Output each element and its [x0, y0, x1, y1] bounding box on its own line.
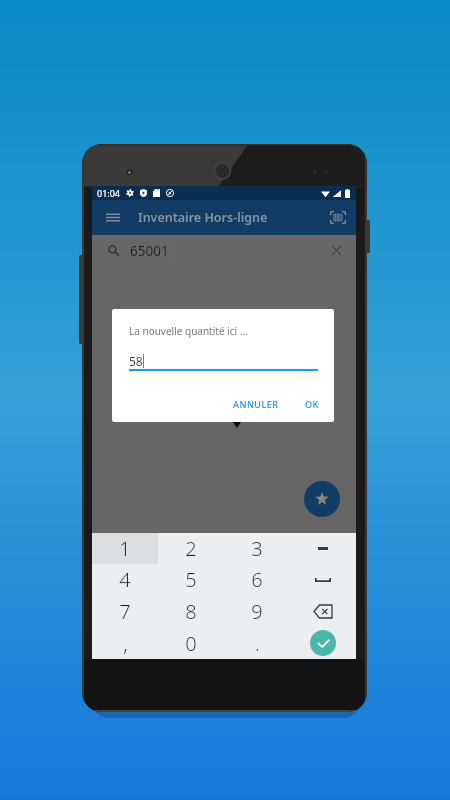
staticText: 58 — [129, 353, 143, 369]
staticText: OK — [305, 398, 319, 410]
button[interactable]: 4 — [92, 564, 158, 595]
button[interactable]: Favorite — [304, 481, 340, 517]
button[interactable]: ok — [290, 627, 356, 659]
staticText: 1 — [119, 535, 131, 562]
staticText: 4 — [119, 566, 131, 593]
staticText: 5 — [185, 566, 197, 593]
button[interactable]: 0 — [158, 627, 224, 659]
staticText: . — [255, 630, 260, 657]
button[interactable]: Menu — [98, 200, 128, 235]
staticText: 2 — [185, 535, 197, 562]
button[interactable]: minus — [290, 533, 356, 564]
button[interactable]: del — [290, 595, 356, 627]
staticText: 6 — [251, 566, 263, 593]
staticText: La nouvelle quantité ici ... — [129, 324, 248, 338]
button[interactable]: 6 — [224, 564, 290, 595]
button[interactable]: Scan barcode — [320, 200, 356, 235]
button[interactable]: OK — [299, 393, 325, 415]
button[interactable]: 9 — [224, 595, 290, 627]
staticText: 9 — [251, 598, 263, 625]
staticText: , — [123, 630, 128, 657]
staticText: 01:04 — [97, 187, 121, 199]
staticText: ANNULER — [233, 398, 279, 410]
button[interactable]: , — [92, 627, 158, 659]
staticText: Inventaire Hors-ligne — [138, 209, 268, 226]
button[interactable]: 3 — [224, 533, 290, 564]
button[interactable]: 8 — [158, 595, 224, 627]
button[interactable]: 5 — [158, 564, 224, 595]
button[interactable]: 7 — [92, 595, 158, 627]
button[interactable]: 1 — [92, 533, 158, 564]
staticText: 7 — [119, 598, 131, 625]
staticText: 65001 — [130, 242, 169, 260]
button[interactable]: ANNULER — [227, 393, 285, 415]
staticText: 3 — [251, 535, 263, 562]
staticText: 0 — [185, 630, 197, 657]
button[interactable]: 2 — [158, 533, 224, 564]
button[interactable]: space — [290, 564, 356, 595]
button[interactable]: . — [224, 627, 290, 659]
button[interactable]: Clear search — [322, 235, 350, 266]
staticText: 8 — [185, 598, 197, 625]
